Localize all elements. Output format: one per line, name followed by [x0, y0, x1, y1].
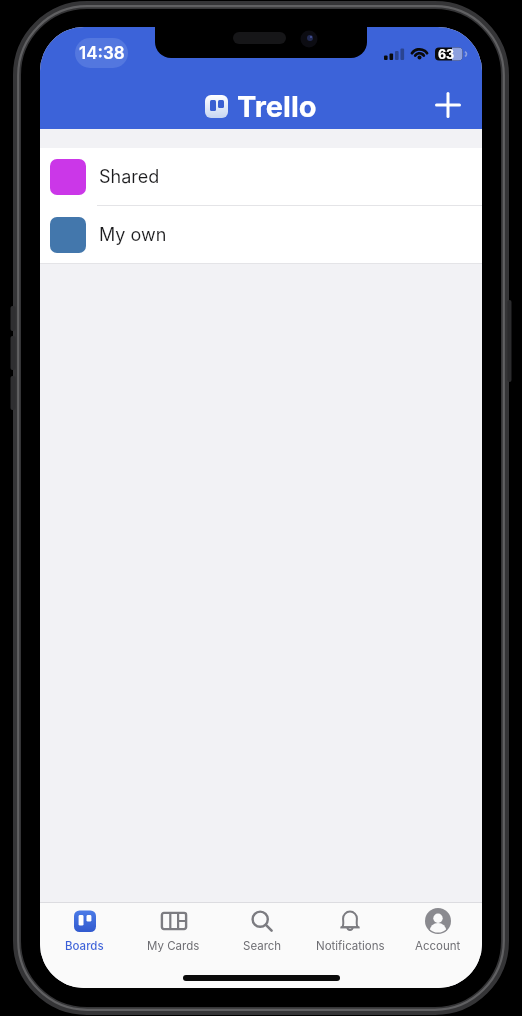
button[interactable]: Shared [40, 148, 482, 206]
button[interactable] [433, 90, 463, 120]
button[interactable]: Notifications [306, 908, 394, 953]
staticText: Search [243, 939, 282, 953]
button[interactable]: My Cards [129, 908, 218, 953]
button[interactable]: Boards [40, 908, 129, 953]
button[interactable]: Account [394, 908, 482, 953]
staticText: Notifications [316, 939, 385, 953]
staticText: Trello [237, 89, 317, 124]
staticText: Account [415, 939, 461, 953]
staticText: Boards [65, 939, 104, 953]
staticText: Shared [99, 166, 160, 188]
staticText: 14:38 [79, 43, 125, 64]
staticText: My own [99, 224, 167, 246]
button[interactable]: Search [218, 908, 306, 953]
button[interactable]: My own [40, 206, 482, 264]
staticText: 63 [438, 47, 458, 62]
staticText: My Cards [147, 939, 200, 953]
